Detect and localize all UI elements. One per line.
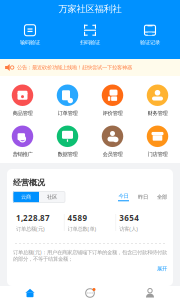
staticText: 订单总额(元)：用户在商家店铺端下订单的金额，包含已付款和待付款的部分，不等于结… xyxy=(13,249,167,262)
button[interactable]: 云商 xyxy=(13,191,39,202)
staticText: 订单管理 xyxy=(57,110,77,117)
button[interactable]: 商品管理 xyxy=(0,84,45,117)
button[interactable]: 首页 xyxy=(0,286,60,300)
button[interactable]: 门店管理 xyxy=(135,126,180,158)
staticText: 公告：最近砍价功能上线啦！赶快尝试一下拉客神器 xyxy=(17,64,132,71)
staticText: 评价管理 xyxy=(102,110,122,117)
button[interactable]: 社区 xyxy=(39,191,65,202)
staticText: 1,228.87 xyxy=(16,213,50,223)
staticText: 经营概况 xyxy=(13,178,45,187)
staticText: 3654 xyxy=(119,213,139,223)
staticText: 扫码验证 xyxy=(80,39,100,46)
button[interactable]: 会员管理 xyxy=(90,126,135,158)
button[interactable]: 全部 xyxy=(157,194,167,200)
staticText: 社区 xyxy=(47,194,57,200)
staticText: 输码验证 xyxy=(20,39,40,46)
staticText: 昨日 xyxy=(138,194,148,200)
button[interactable]: 营销推广 xyxy=(0,126,45,158)
button[interactable]: 昨日 xyxy=(138,194,148,200)
button[interactable]: 数据管理 xyxy=(45,126,90,158)
button[interactable]: 评价管理 xyxy=(90,84,135,117)
staticText: 商品管理 xyxy=(12,110,32,117)
button[interactable]: 验证记录 xyxy=(120,18,180,52)
button[interactable]: 订单管理 xyxy=(45,84,90,117)
staticText: 会员管理 xyxy=(102,151,122,158)
staticText: 全部 xyxy=(157,194,167,200)
staticText: 验证记录 xyxy=(140,39,160,46)
staticText: 数据管理 xyxy=(57,151,77,158)
staticText: 4589 xyxy=(68,213,88,223)
staticText: 财务管理 xyxy=(147,110,167,117)
staticText: 展开 xyxy=(157,265,167,272)
staticText: 云商 xyxy=(21,194,31,200)
button[interactable]: 公告：最近砍价功能上线啦！赶快尝试一下拉客神器 xyxy=(0,59,180,76)
button[interactable]: 今日 xyxy=(118,193,129,201)
button[interactable]: 财务管理 xyxy=(135,84,180,117)
button[interactable]: 扫码验证 xyxy=(60,18,120,52)
button[interactable]: 展开 xyxy=(157,265,167,272)
button[interactable]: 输码验证 xyxy=(0,18,60,52)
staticText: 万家社区福利社 xyxy=(58,3,121,15)
button[interactable]: 消息 xyxy=(60,286,120,300)
staticText: 今日 xyxy=(118,193,128,199)
staticText: 营销推广 xyxy=(12,151,32,158)
staticText: 订单总数(单) xyxy=(68,225,97,232)
staticText: 访客(人) xyxy=(119,225,138,232)
button[interactable]: 我的 xyxy=(120,286,180,300)
staticText: 订单总额(元) xyxy=(16,225,45,232)
staticText: 门店管理 xyxy=(147,151,167,158)
